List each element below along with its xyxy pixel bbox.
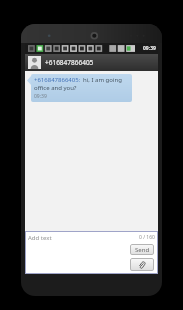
staticText: office and you? (34, 84, 77, 92)
button[interactable]: Send (130, 244, 154, 255)
staticText: +616847866405: (34, 76, 81, 84)
button[interactable]: +616847866405: (31, 74, 132, 102)
staticText: Send (135, 246, 150, 254)
staticText: +616847866405 (45, 58, 94, 67)
staticText: 0 / 160 (139, 234, 155, 241)
button[interactable]: Add text (25, 231, 158, 244)
staticText: hi, I am going (83, 76, 122, 84)
button[interactable]: +616847866405 (25, 54, 158, 71)
staticText: 09:39 (143, 45, 156, 52)
staticText: Add text (28, 234, 52, 242)
button[interactable]: Attach file (130, 258, 154, 271)
staticText: 09:39 (34, 93, 47, 100)
